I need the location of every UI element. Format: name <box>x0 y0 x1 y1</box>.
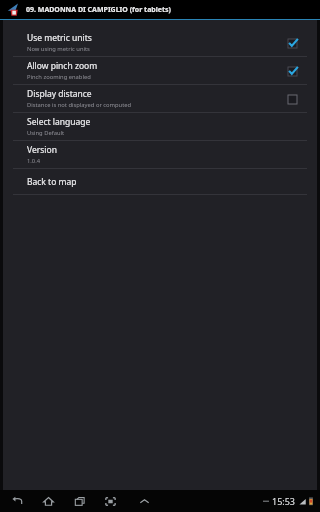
button[interactable]: Checked <box>285 64 299 78</box>
button[interactable]: Unchecked <box>285 92 299 106</box>
staticText: Select language <box>27 116 91 128</box>
staticText: 15:53 <box>272 495 296 507</box>
staticText: 09. MADONNA DI CAMPIGLIO (for tablets) <box>26 5 171 15</box>
button[interactable]: Home <box>39 490 57 512</box>
staticText: Pinch zooming enabled <box>27 73 91 81</box>
staticText: 1.0.4 <box>27 157 41 165</box>
staticText: Version <box>27 144 57 156</box>
staticText: Back to map <box>27 176 77 188</box>
button[interactable]: Recent apps <box>70 490 88 512</box>
staticText: Use metric units <box>27 32 92 44</box>
button[interactable]: Version <box>3 141 317 168</box>
button[interactable]: Use metric units <box>3 29 317 56</box>
button[interactable]: Select language <box>3 113 317 140</box>
button[interactable]: Back <box>8 490 26 512</box>
button[interactable]: Display distance <box>3 85 317 112</box>
button[interactable]: Allow pinch zoom <box>3 57 317 84</box>
button[interactable]: Screenshot <box>101 490 119 512</box>
staticText: Now using metric units <box>27 45 90 53</box>
staticText: Allow pinch zoom <box>27 60 98 72</box>
staticText: Distance is not displayed or computed <box>27 101 132 109</box>
button[interactable]: Back to map <box>3 169 317 194</box>
staticText: Display distance <box>27 88 92 100</box>
button[interactable]: Checked <box>285 36 299 50</box>
staticText: Using Default <box>27 129 65 137</box>
button[interactable]: Expand <box>135 490 153 512</box>
